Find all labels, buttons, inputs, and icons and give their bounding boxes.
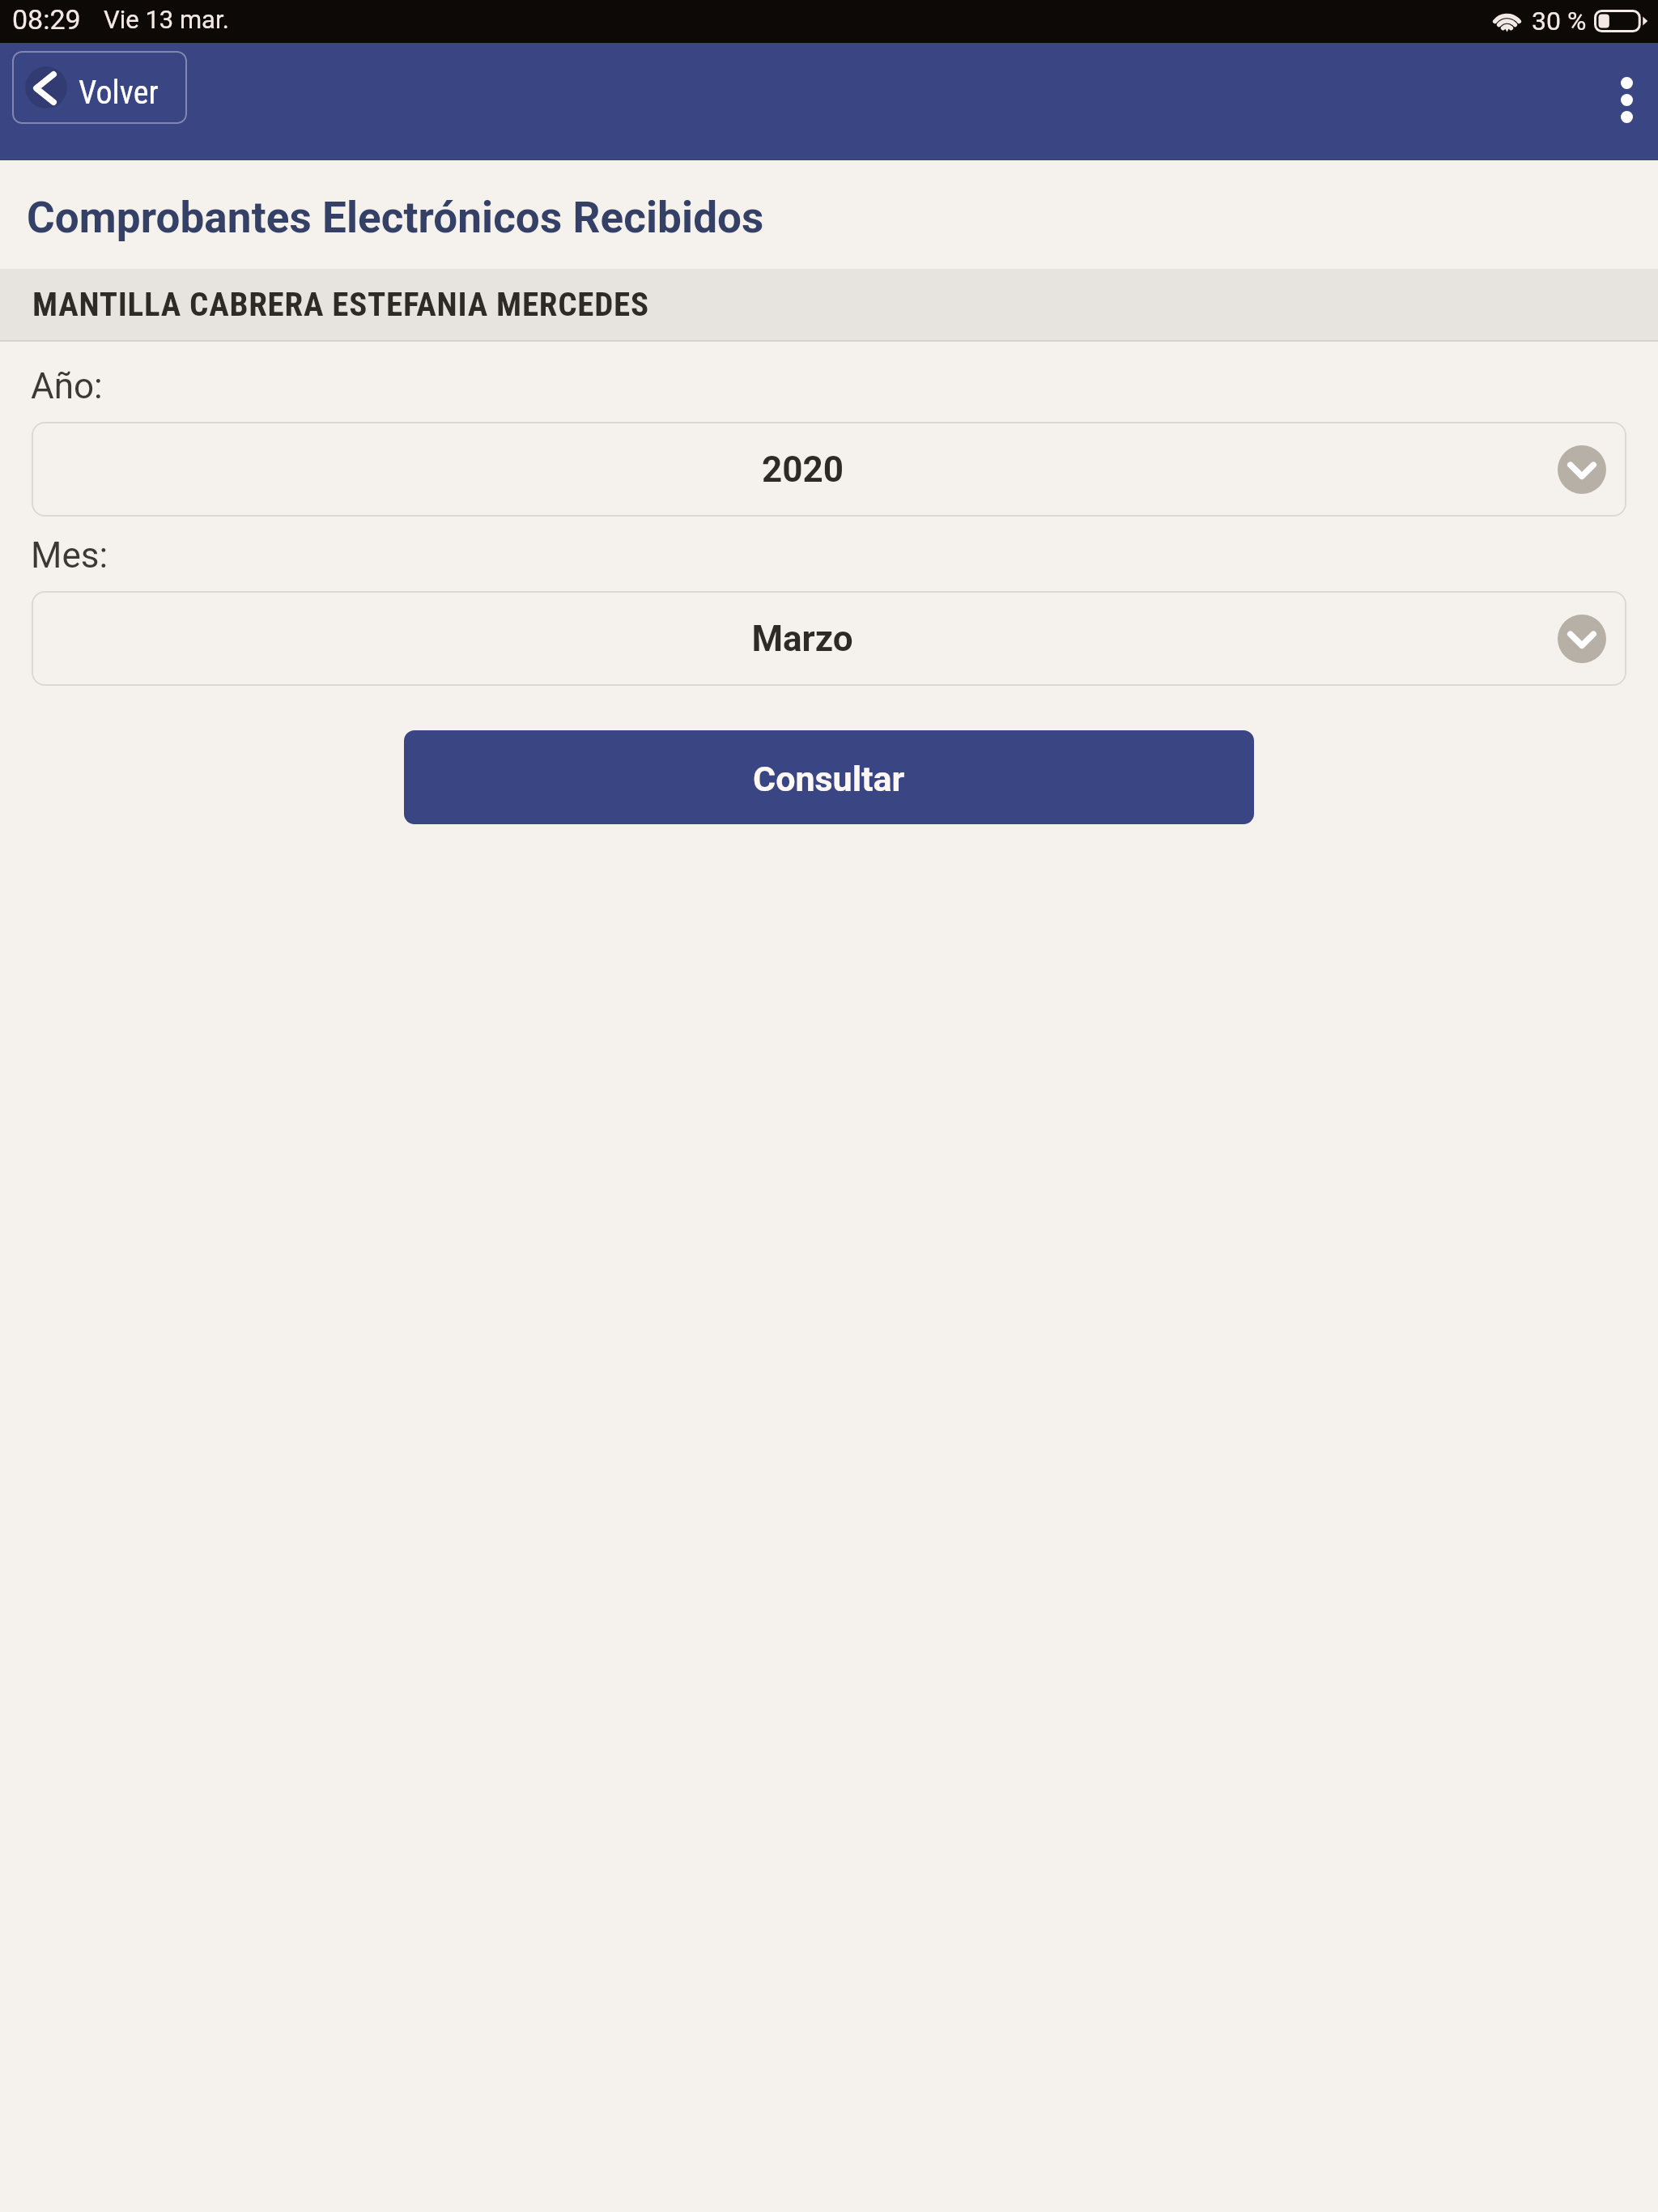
staticText: 2020 <box>762 449 844 491</box>
button[interactable]: Consultar <box>404 730 1254 824</box>
button[interactable]: Volver <box>12 51 187 124</box>
staticText: Marzo <box>751 618 853 660</box>
button[interactable]: 2020 <box>32 422 1626 517</box>
button[interactable]: Marzo <box>32 591 1626 686</box>
staticText: Consultar <box>753 759 905 799</box>
staticText: MANTILLA CABRERA ESTEFANIA MERCEDES <box>32 285 649 324</box>
staticText: Volver <box>79 74 159 112</box>
staticText: 30 % <box>1532 6 1587 36</box>
staticText: Vie 13 mar. <box>104 5 229 34</box>
staticText: 08:29 <box>12 3 81 36</box>
button[interactable]: More options <box>1608 63 1645 136</box>
staticText: Mes: <box>31 534 108 576</box>
staticText: Comprobantes Electrónicos Recibidos <box>27 193 764 243</box>
staticText: Año: <box>31 365 103 407</box>
